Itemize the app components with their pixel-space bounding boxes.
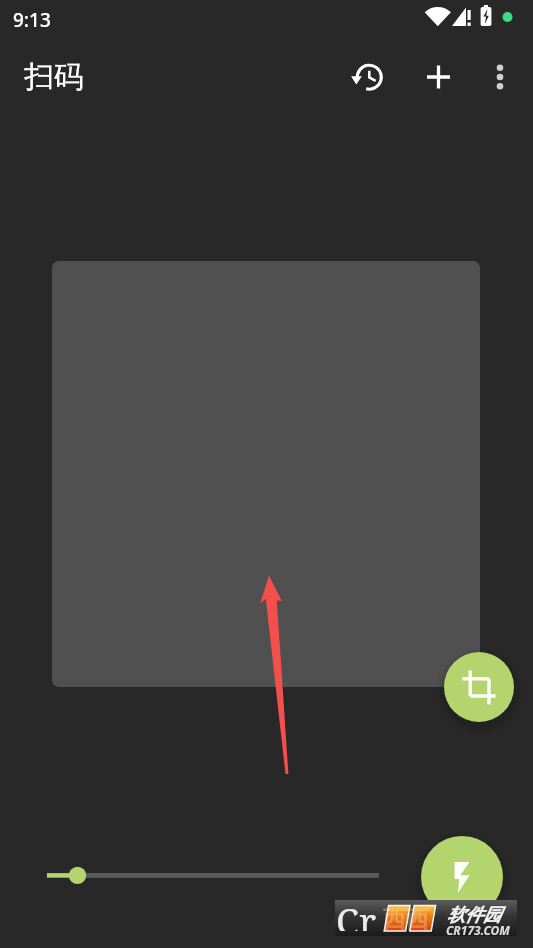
- button[interactable]: Flash: [421, 836, 503, 918]
- button[interactable]: Add: [414, 53, 462, 101]
- staticText: 扫码: [24, 58, 84, 96]
- staticText: 9:13: [13, 7, 51, 33]
- staticText: 软件园: [447, 904, 501, 927]
- button[interactable]: More options: [476, 53, 524, 101]
- button[interactable]: Zoom slider: [36, 855, 391, 895]
- button[interactable]: Crop: [444, 652, 514, 722]
- staticText: 西西: [383, 905, 429, 934]
- button[interactable]: Scan preview: [52, 261, 480, 687]
- staticText: CR173.COM: [446, 922, 510, 938]
- staticText: Cr: [336, 895, 377, 931]
- button[interactable]: History: [345, 53, 393, 101]
